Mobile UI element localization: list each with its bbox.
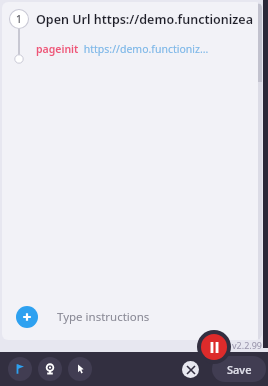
- button[interactable]: Add instruction: [16, 306, 38, 328]
- staticText: Save: [227, 362, 252, 377]
- button[interactable]: Cancel: [182, 361, 199, 378]
- button[interactable]: Pause recording: [197, 330, 231, 364]
- staticText: Type instructions: [57, 309, 150, 325]
- staticText: pageinit https://demo.functioniz…: [36, 42, 209, 56]
- button[interactable]: Save: [212, 356, 266, 382]
- staticText: 1: [16, 12, 22, 26]
- staticText: v2.2.99: [232, 339, 262, 351]
- button[interactable]: Flag: [8, 357, 32, 381]
- button[interactable]: Inspect: [38, 357, 62, 381]
- staticText: Open Url https://demo.functionizea: [36, 11, 253, 28]
- button[interactable]: 1: [2, 2, 262, 80]
- button[interactable]: Add instruction: [2, 294, 262, 340]
- button[interactable]: Click action: [68, 357, 92, 381]
